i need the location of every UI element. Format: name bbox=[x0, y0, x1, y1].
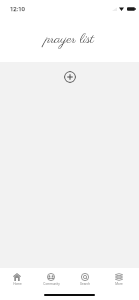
staticText: Search bbox=[80, 282, 90, 286]
button[interactable]: Community bbox=[34, 268, 68, 286]
button[interactable]: Search bbox=[68, 268, 102, 286]
button[interactable]: Add prayer bbox=[64, 71, 76, 83]
staticText: Community bbox=[43, 282, 60, 286]
button[interactable]: More bbox=[102, 268, 136, 286]
staticText: Home bbox=[13, 282, 22, 286]
staticText: 12:10 bbox=[10, 5, 25, 12]
staticText: prayer list bbox=[45, 30, 94, 49]
button[interactable]: Home bbox=[0, 268, 34, 286]
staticText: More bbox=[115, 282, 123, 286]
